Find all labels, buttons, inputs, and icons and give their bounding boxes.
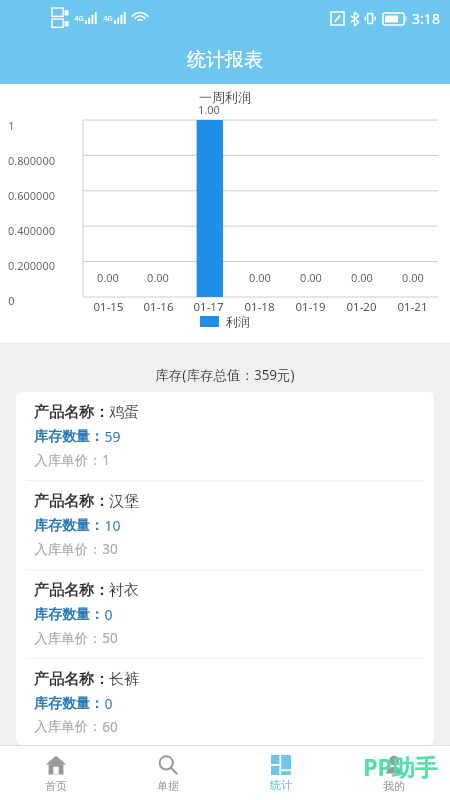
staticText: 0.00 [97,270,119,285]
staticText: 1 [8,118,15,133]
staticText: 库存数量： [34,517,104,535]
staticText: 库存数量： [34,606,104,624]
staticText: 库存数量： [34,428,104,446]
staticText: 60 [102,718,118,734]
button[interactable]: 首页 [0,746,112,800]
staticText: 4G [74,14,84,24]
staticText: 首页 [45,779,67,793]
staticText: 0.00 [249,270,271,285]
staticText: 入库单价： [34,718,102,734]
staticText: 59 [104,427,121,446]
staticText: 50 [102,629,118,647]
staticText: 01-17 [193,299,224,315]
staticText: 0.200000 [8,258,55,273]
button[interactable]: 产品名称： [16,392,434,480]
staticText: 衬衣 [109,581,139,600]
staticText: 10 [104,516,121,535]
staticText: 0.00 [300,270,322,285]
staticText: PP助手 [363,751,438,782]
staticText: 4G [103,14,113,24]
staticText: 产品名称： [34,492,109,511]
staticText: 3:18 [412,9,440,28]
staticText: 长裤 [109,670,139,689]
staticText: 30 [102,540,118,558]
staticText: 0 [104,694,113,713]
staticText: 0.00 [402,270,424,285]
staticText: 统计报表 [187,48,263,72]
staticText: 一周利润 [199,89,251,105]
staticText: 利润 [226,314,250,329]
staticText: 01-15 [93,299,124,315]
staticText: 01-19 [295,299,326,315]
staticText: 统计 [270,778,292,792]
staticText: 入库单价： [34,630,102,647]
button[interactable]: 统计 [224,746,337,800]
staticText: 01-18 [244,299,275,315]
button[interactable]: 产品名称： [16,481,434,569]
button[interactable]: 单据 [112,746,224,800]
staticText: 01-16 [143,299,174,315]
staticText: 0.400000 [8,223,55,238]
staticText: 0.800000 [8,153,55,168]
button[interactable]: 产品名称： [16,570,434,658]
staticText: 我的 [383,779,405,793]
button[interactable]: 产品名称： [16,659,434,745]
staticText: 入库单价： [34,541,102,558]
staticText: 产品名称： [34,403,109,422]
staticText: 汉堡 [109,492,139,511]
staticText: 1.00 [198,102,220,117]
staticText: 库存(库存总值：359元) [155,366,295,384]
staticText: 产品名称： [34,670,109,689]
staticText: 0 [104,605,113,624]
staticText: 01-20 [346,299,377,315]
staticText: 鸡蛋 [109,403,139,422]
staticText: 01-21 [397,299,428,315]
staticText: 单据 [157,779,179,793]
staticText: 入库单价： [34,452,102,469]
staticText: 0.00 [351,270,373,285]
staticText: 0.600000 [8,188,55,203]
staticText: 产品名称： [34,581,109,600]
staticText: 库存数量： [34,695,104,713]
button[interactable]: 我的 [337,746,450,800]
staticText: 1 [102,451,110,469]
staticText: 0.00 [147,270,169,285]
staticText: 0 [8,293,15,308]
